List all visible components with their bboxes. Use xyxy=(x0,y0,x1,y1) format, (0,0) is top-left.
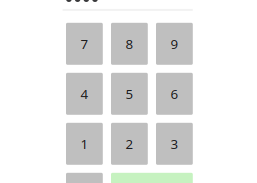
button[interactable]: 1 xyxy=(66,123,103,165)
button[interactable]: 7 xyxy=(66,23,103,65)
button[interactable]: 5 xyxy=(111,73,148,115)
button[interactable]: 8 xyxy=(111,23,148,65)
button[interactable]: 6 xyxy=(156,73,193,115)
button[interactable]: 2 xyxy=(111,123,148,165)
staticText: 7 xyxy=(80,35,88,53)
staticText: 4 xyxy=(80,85,88,103)
button[interactable]: 9 xyxy=(156,23,193,65)
staticText: 8 xyxy=(125,35,133,53)
button[interactable]: 3 xyxy=(156,123,193,165)
staticText: 9 xyxy=(170,35,178,53)
button[interactable]: 4 xyxy=(66,73,103,115)
staticText: 3 xyxy=(170,135,178,153)
staticText: 6 xyxy=(170,85,178,103)
staticText: 5 xyxy=(125,85,133,103)
staticText: 2 xyxy=(125,135,133,153)
staticText: 1 xyxy=(80,135,88,153)
